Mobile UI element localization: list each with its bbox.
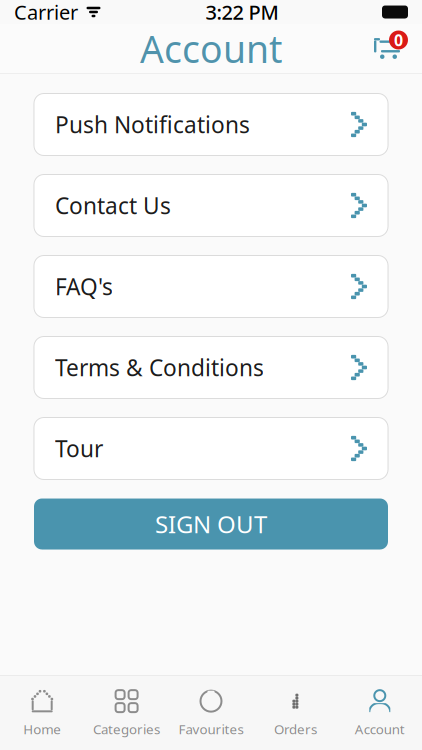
staticText: Home (23, 720, 61, 738)
staticText: Account (355, 720, 405, 738)
button[interactable]: Categories (84, 676, 169, 750)
button[interactable]: Cart, 0 items (366, 26, 410, 70)
staticText: Contact Us (55, 190, 171, 220)
button[interactable]: Terms & Conditions (34, 336, 388, 398)
button[interactable]: Orders (253, 676, 338, 750)
staticText: Account (140, 24, 282, 73)
button[interactable]: Push Notifications (34, 93, 388, 155)
staticText: Orders (274, 720, 317, 738)
staticText: 0 (394, 29, 403, 51)
staticText: SIGN OUT (155, 508, 267, 540)
staticText: Terms & Conditions (55, 352, 264, 382)
button[interactable]: Favourites (169, 676, 253, 750)
button[interactable]: Home (0, 676, 84, 750)
staticText: Favourites (178, 720, 243, 738)
button[interactable]: Account (338, 676, 422, 750)
staticText: Categories (93, 720, 160, 738)
staticText: Tour (55, 433, 103, 463)
button[interactable]: FAQ's (34, 255, 388, 317)
staticText: 3:22 PM (205, 0, 278, 25)
button[interactable]: Contact Us (34, 174, 388, 236)
staticText: Push Notifications (55, 109, 250, 139)
staticText: Carrier (14, 0, 78, 25)
button[interactable]: SIGN OUT (34, 498, 388, 549)
button[interactable]: Tour (34, 417, 388, 479)
staticText: FAQ's (55, 271, 113, 301)
